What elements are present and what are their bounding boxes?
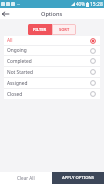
staticText: All: [7, 37, 13, 44]
button[interactable]: Completed: [4, 56, 100, 66]
button[interactable]: FILTER: [28, 24, 52, 35]
staticText: 40%: [76, 1, 85, 7]
staticText: Closed: [7, 91, 23, 98]
button[interactable]: All: [4, 36, 100, 45]
staticText: Options: [41, 10, 63, 18]
button[interactable]: APPLY OPTIONS: [52, 172, 104, 184]
staticText: Not Started: [7, 69, 33, 76]
staticText: SORT: [59, 27, 70, 32]
staticText: Clear All: [17, 175, 35, 181]
button[interactable]: SORT: [52, 24, 76, 35]
button[interactable]: Ongoing: [4, 46, 100, 55]
staticText: FILTER: [33, 27, 47, 32]
button[interactable]: Closed: [4, 89, 100, 99]
staticText: APPLY OPTIONS: [62, 175, 95, 181]
staticText: Completed: [7, 58, 32, 65]
button[interactable]: Not Started: [4, 67, 100, 77]
button[interactable]: Back: [0, 8, 11, 19]
staticText: 15:28: [90, 1, 103, 8]
button[interactable]: Assigned: [4, 78, 100, 88]
staticText: Assigned: [7, 80, 28, 87]
staticText: Ongoing: [7, 47, 27, 54]
button[interactable]: Clear All: [0, 172, 52, 184]
